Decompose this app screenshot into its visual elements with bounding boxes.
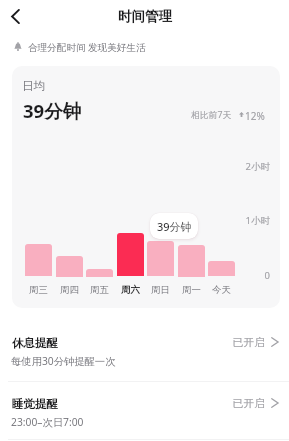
staticText: 每使用30分钟提醒一次: [11, 354, 116, 368]
staticText: 0: [222, 269, 270, 282]
staticText: 休息提醒: [12, 336, 58, 350]
staticText: 周六: [114, 284, 147, 296]
button[interactable]: 休息提醒: [0, 330, 289, 378]
staticText: 合理分配时间 发现美好生活: [28, 41, 146, 54]
staticText: 周一: [175, 284, 208, 296]
staticText: 周四: [53, 284, 86, 296]
staticText: 1小时: [222, 214, 270, 227]
staticText: 39分钟: [23, 98, 82, 123]
staticText: 睡觉提醒: [12, 397, 58, 411]
button[interactable]: Back: [2, 3, 28, 29]
staticText: 相比前7天: [191, 109, 232, 121]
staticText: 39分钟: [157, 219, 192, 234]
staticText: 今天: [205, 284, 238, 296]
staticText: 12%: [245, 109, 265, 123]
staticText: 周五: [83, 284, 116, 296]
staticText: 周三: [22, 284, 55, 296]
staticText: 日均: [22, 79, 45, 93]
staticText: 周日: [144, 284, 177, 296]
staticText: 时间管理: [118, 8, 172, 25]
staticText: 23:00–次日7:00: [11, 415, 84, 429]
staticText: 已开启: [200, 397, 265, 411]
button[interactable]: 睡觉提醒: [0, 391, 289, 439]
staticText: 已开启: [200, 336, 265, 350]
staticText: 2小时: [222, 160, 270, 173]
